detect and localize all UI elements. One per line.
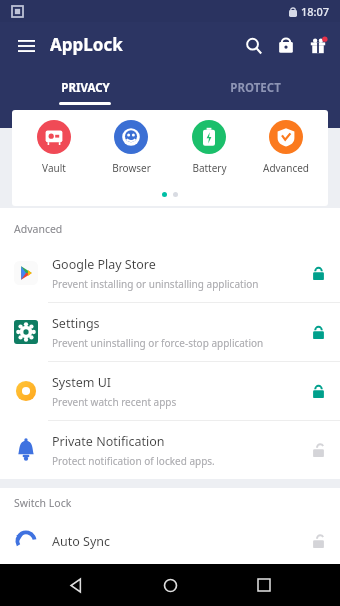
staticText: Browser xyxy=(112,161,151,175)
staticText: Prevent installing or uninstalling appli… xyxy=(52,277,259,291)
staticText: Advanced xyxy=(263,161,309,175)
staticText: 18:07 xyxy=(301,4,330,19)
button[interactable]: Search xyxy=(238,30,270,62)
staticText: Settings xyxy=(52,315,100,332)
staticText: Switch Lock xyxy=(14,496,72,510)
button[interactable]: Auto Sync xyxy=(0,518,340,564)
button[interactable]: Menu xyxy=(10,30,42,62)
staticText: AppLock xyxy=(50,33,123,56)
button[interactable]: Back xyxy=(60,568,94,602)
button[interactable]: Notifications xyxy=(302,30,334,62)
button[interactable]: Home xyxy=(153,568,187,602)
button[interactable]: System UI xyxy=(0,362,340,420)
staticText: Auto Sync xyxy=(52,533,111,550)
staticText: PROTECT xyxy=(230,80,281,96)
button[interactable]: Battery xyxy=(173,120,245,175)
staticText: Advanced xyxy=(14,222,63,236)
staticText: Battery xyxy=(192,161,227,175)
staticText: Google Play Store xyxy=(52,256,156,273)
button[interactable]: PROTECT xyxy=(170,74,340,110)
button[interactable]: PRIVACY xyxy=(0,74,170,110)
button[interactable]: Private Notification xyxy=(0,421,340,479)
button[interactable]: Offers xyxy=(270,30,302,62)
staticText: System UI xyxy=(52,374,112,391)
button[interactable]: Google Play Store xyxy=(0,244,340,302)
staticText: PRIVACY xyxy=(61,80,110,96)
button[interactable]: Vault xyxy=(18,120,90,175)
button[interactable]: Advanced xyxy=(250,120,322,175)
button[interactable]: Browser xyxy=(95,120,167,175)
button[interactable]: Recents xyxy=(247,568,281,602)
button[interactable]: Settings xyxy=(0,303,340,361)
staticText: Vault xyxy=(42,161,66,175)
staticText: Private Notification xyxy=(52,433,165,450)
staticText: Prevent uninstalling or force-stop appli… xyxy=(52,336,264,350)
staticText: Prevent watch recent apps xyxy=(52,395,177,409)
staticText: Protect notification of locked apps. xyxy=(52,454,215,468)
